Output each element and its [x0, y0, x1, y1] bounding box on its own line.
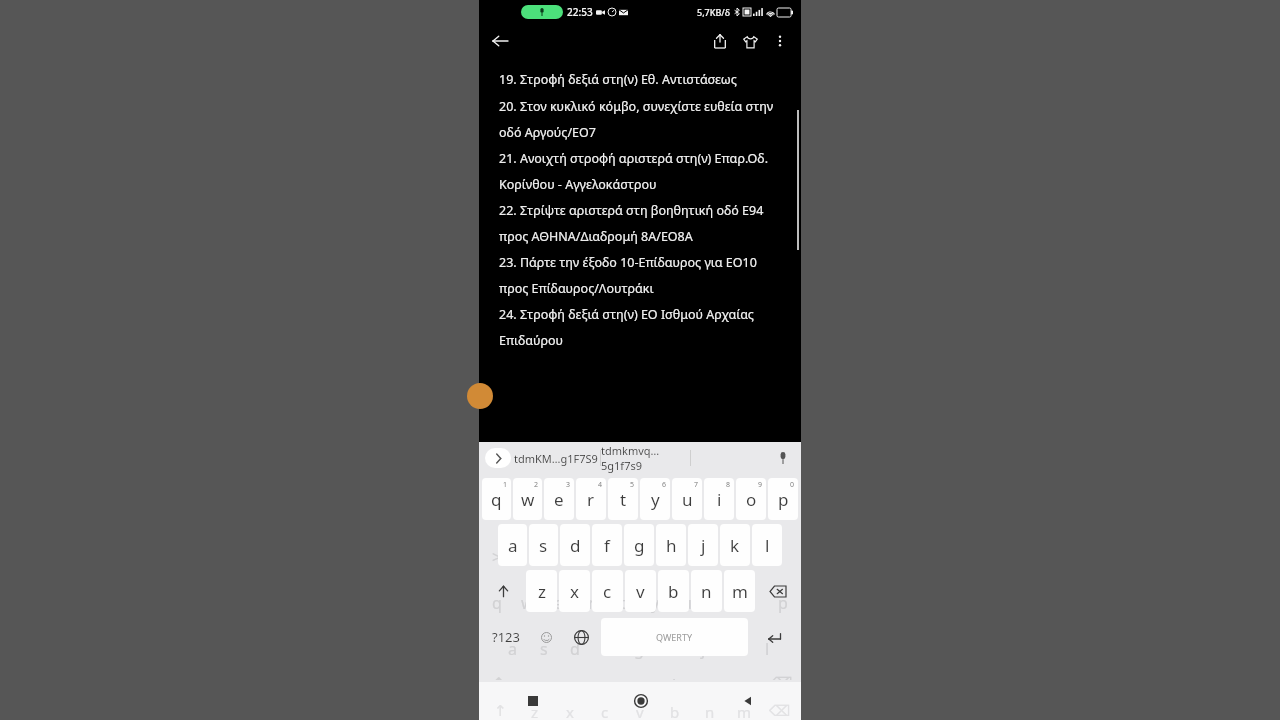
staticText: f — [604, 638, 610, 660]
staticText: 22:53 — [567, 5, 593, 19]
staticText: 7 — [694, 480, 699, 490]
staticText: h — [666, 638, 676, 660]
button[interactable]: c — [592, 570, 623, 612]
button[interactable]: l — [752, 524, 782, 566]
staticText: d — [570, 638, 580, 660]
staticText: 0 — [790, 480, 795, 490]
staticText: q — [492, 592, 502, 614]
button[interactable]: y — [640, 478, 670, 520]
button[interactable]: o — [736, 478, 766, 520]
button[interactable]: 23. Πάρτε την έξοδο 10-Επίδαυρος για ΕΟ1… — [499, 249, 779, 301]
staticText: tdmKM…g1F7S9 — [514, 451, 598, 466]
button[interactable]: p — [768, 478, 798, 520]
button[interactable]: e — [544, 478, 574, 520]
staticText: v — [636, 702, 644, 720]
staticText: k — [731, 638, 740, 660]
button[interactable]: v — [625, 570, 656, 612]
staticText: q — [491, 488, 502, 511]
button[interactable]: b — [658, 570, 689, 612]
staticText: c — [601, 702, 609, 720]
staticText: > — [492, 546, 502, 568]
button[interactable]: r — [576, 478, 606, 520]
staticText: QWERTY — [656, 631, 693, 643]
button[interactable]: s — [529, 524, 558, 566]
button[interactable]: i — [704, 478, 734, 520]
staticText: 6 — [662, 480, 667, 490]
staticText: 20. Στον κυκλικό κόμβο, συνεχίστε ευθεία… — [499, 98, 779, 140]
staticText: b — [672, 674, 682, 680]
button[interactable]: Shift — [481, 568, 525, 614]
staticText: t — [620, 488, 627, 511]
staticText: s — [539, 534, 548, 557]
staticText: e — [554, 592, 564, 614]
staticText: 23. Πάρτε την έξοδο 10-Επίδαυρος για ΕΟ1… — [499, 254, 779, 296]
staticText: u — [682, 488, 693, 511]
button[interactable]: Emoji — [530, 614, 563, 660]
button[interactable]: t — [608, 478, 638, 520]
button[interactable]: Expand suggestions — [485, 448, 511, 468]
staticText: n — [705, 702, 715, 720]
button[interactable]: z — [526, 570, 557, 612]
button[interactable]: Outfit — [735, 26, 765, 56]
button[interactable]: q — [482, 478, 511, 520]
staticText: x — [570, 580, 579, 603]
button[interactable]: Enter — [750, 614, 799, 660]
staticText: g — [634, 638, 644, 660]
staticText: 5,7KB/δ — [697, 6, 731, 18]
button[interactable]: Recents — [479, 682, 587, 720]
button[interactable]: QWERTY — [601, 618, 748, 656]
staticText: m — [732, 580, 748, 603]
button[interactable]: j — [688, 524, 718, 566]
staticText: ?123 — [492, 628, 520, 646]
button[interactable]: Voice input — [771, 446, 795, 470]
staticText: 9 — [758, 480, 763, 490]
staticText: d — [570, 534, 581, 557]
staticText: y — [651, 592, 660, 614]
button[interactable]: 24. Στροφή δεξιά στη(ν) ΕΟ Ισθμού Αρχαία… — [499, 301, 779, 353]
button[interactable]: h — [656, 524, 686, 566]
staticText: i — [717, 592, 722, 614]
button[interactable]: w — [513, 478, 542, 520]
button[interactable]: tdmkmvq…5g1f7s9 — [601, 442, 690, 474]
button[interactable]: 19. Στροφή δεξιά στη(ν) Εθ. Αντιστάσεως — [499, 66, 779, 93]
staticText: o — [746, 592, 756, 614]
staticText: b — [670, 702, 680, 720]
staticText: r — [588, 592, 595, 614]
button[interactable]: d — [560, 524, 590, 566]
staticText: o — [746, 488, 757, 511]
button[interactable]: Share — [705, 26, 735, 56]
staticText: 5 — [630, 480, 635, 490]
staticText: ↑ — [494, 702, 507, 719]
button[interactable]: Home — [587, 682, 694, 720]
button[interactable]: More options — [765, 26, 795, 56]
staticText: i — [717, 488, 722, 511]
button[interactable]: Back — [694, 682, 801, 720]
button[interactable]: 22. Στρίψτε αριστερά στη βοηθητική οδό Ε… — [499, 197, 779, 249]
button[interactable]: x — [559, 570, 590, 612]
button[interactable]: u — [672, 478, 702, 520]
button[interactable]: Backspace — [756, 568, 799, 614]
staticText: 19. Στροφή δεξιά στη(ν) Εθ. Αντιστάσεως — [499, 71, 737, 88]
staticText: r — [587, 488, 595, 511]
button[interactable]: g — [624, 524, 654, 566]
button[interactable]: a — [498, 524, 527, 566]
button[interactable]: f — [592, 524, 622, 566]
button[interactable]: n — [691, 570, 722, 612]
staticText: w — [521, 488, 535, 511]
button[interactable]: Change language — [563, 614, 599, 660]
staticText: f — [604, 534, 610, 557]
staticText: p — [778, 592, 788, 614]
staticText: a — [508, 638, 517, 660]
button[interactable]: ?123 — [481, 614, 530, 660]
button[interactable]: k — [720, 524, 750, 566]
button[interactable]: Back — [485, 26, 515, 56]
staticText: p — [778, 488, 789, 511]
button[interactable]: tdmKM…g1F7S9 — [511, 442, 600, 474]
button[interactable]: m — [724, 570, 755, 612]
button[interactable]: 20. Στον κυκλικό κόμβο, συνεχίστε ευθεία… — [499, 93, 779, 145]
button[interactable]: 21. Ανοιχτή στροφή αριστερά στη(ν) Επαρ.… — [499, 145, 779, 197]
